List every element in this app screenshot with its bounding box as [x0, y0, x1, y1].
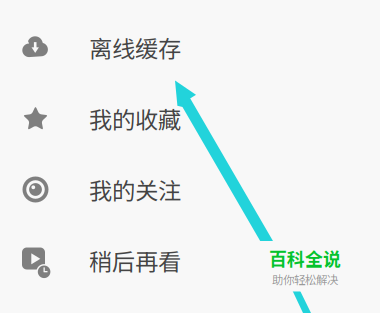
staticText: 助你轻松解决 [272, 271, 338, 287]
staticText: 离线缓存 [89, 31, 181, 64]
staticText: 稍后再看 [89, 244, 181, 277]
staticText: 我的关注 [89, 173, 181, 206]
button[interactable]: 稍后再看 [0, 225, 380, 296]
staticText: 我的收藏 [89, 102, 181, 135]
staticText: 百科全说 [269, 245, 341, 271]
button[interactable]: 我的关注 [0, 154, 380, 225]
button[interactable]: 离线缓存 [0, 12, 380, 83]
button[interactable]: 我的收藏 [0, 83, 380, 154]
